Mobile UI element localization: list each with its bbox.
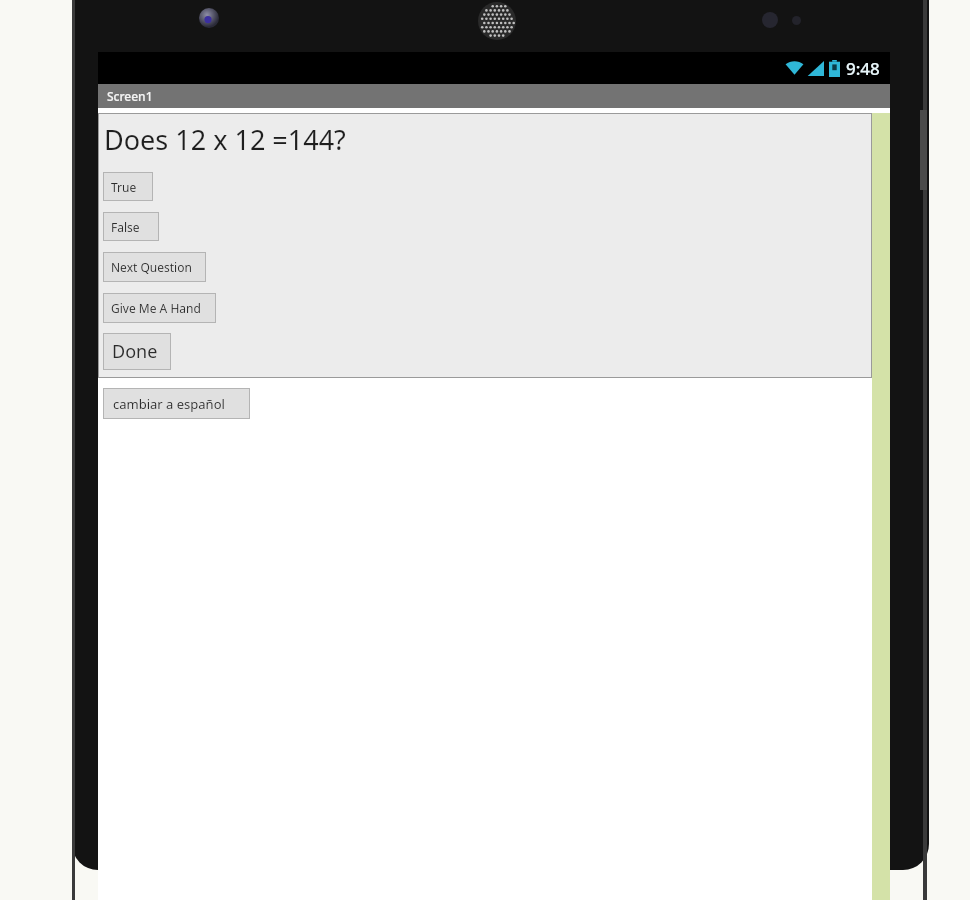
button[interactable]: Give Me A Hand xyxy=(103,293,216,323)
staticText: 9:48 xyxy=(846,57,880,80)
staticText: Does 12 x 12 =144? xyxy=(104,121,346,158)
staticText: Next Question xyxy=(111,259,192,275)
staticText: Give Me A Hand xyxy=(111,300,201,316)
staticText: Screen1 xyxy=(107,88,153,104)
button[interactable]: cambiar a español xyxy=(103,388,250,419)
button[interactable]: Done xyxy=(103,333,171,370)
staticText: Done xyxy=(112,339,158,364)
staticText: True xyxy=(111,179,137,195)
button[interactable]: False xyxy=(103,212,159,241)
staticText: False xyxy=(111,219,140,235)
button[interactable]: Next Question xyxy=(103,252,206,282)
button[interactable]: True xyxy=(103,172,153,201)
staticText: cambiar a español xyxy=(113,395,225,413)
